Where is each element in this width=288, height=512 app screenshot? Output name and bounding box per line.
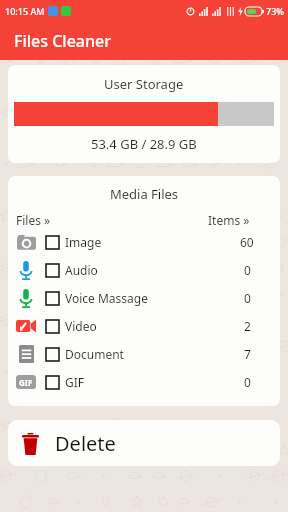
staticText: 2 (244, 318, 251, 334)
staticText: 0 (244, 262, 251, 278)
button[interactable]: Audio (8, 256, 280, 284)
staticText: Document (65, 346, 124, 362)
staticText: 0 (244, 290, 251, 306)
staticText: Files » (16, 212, 51, 228)
staticText: 73% (266, 5, 284, 17)
button[interactable]: Document (8, 340, 280, 368)
button[interactable]: Voice Massage (8, 284, 280, 312)
staticText: 7 (244, 346, 251, 362)
staticText: Items » (208, 212, 250, 228)
staticText: 53.4 GB / 28.9 GB (91, 135, 197, 153)
staticText: GIF (19, 377, 33, 388)
staticText: Image (65, 234, 102, 250)
staticText: GIF (65, 374, 85, 390)
staticText: Video (65, 318, 97, 334)
button[interactable]: Image (8, 228, 280, 256)
button[interactable]: GIF (8, 368, 280, 396)
staticText: Audio (65, 262, 98, 278)
staticText: 60 (240, 234, 254, 250)
button[interactable]: Delete (8, 420, 280, 466)
button[interactable]: Video (8, 312, 280, 340)
staticText: Media Files (8, 185, 280, 203)
staticText: User Storage (104, 75, 184, 93)
staticText: 10:15 AM (5, 5, 45, 17)
staticText: Files Cleaner (14, 30, 112, 52)
staticText: 0 (244, 374, 251, 390)
staticText: Delete (55, 430, 116, 457)
staticText: Voice Massage (65, 290, 148, 306)
